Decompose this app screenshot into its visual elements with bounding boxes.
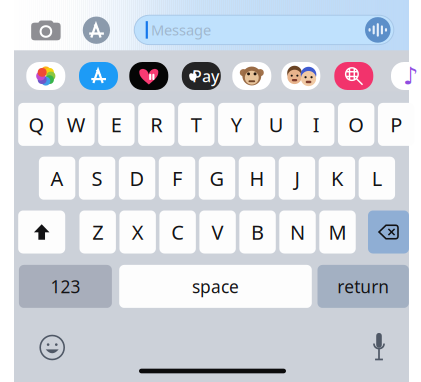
staticText: S	[92, 165, 103, 191]
staticText: G	[209, 165, 224, 191]
staticText: A	[51, 165, 64, 191]
button[interactable]: Record audio message	[365, 17, 391, 43]
staticText: N	[290, 219, 305, 245]
staticText: B	[251, 219, 264, 245]
staticText: W	[67, 111, 86, 138]
staticText: J	[294, 165, 299, 191]
button[interactable]: W	[58, 103, 95, 146]
button[interactable]: Dictation	[370, 332, 388, 360]
button[interactable]: B	[239, 210, 276, 253]
button[interactable]: N	[279, 210, 316, 253]
button[interactable]: App Store	[79, 62, 118, 90]
staticText: 123	[50, 275, 80, 298]
button[interactable]: S	[79, 157, 115, 200]
button[interactable]: Q	[18, 103, 55, 146]
button[interactable]: Camera	[30, 19, 61, 41]
button[interactable]: Images	[334, 62, 373, 90]
button[interactable]: K	[319, 157, 355, 200]
button[interactable]: L	[359, 157, 395, 200]
button[interactable]: O	[338, 103, 374, 146]
button[interactable]: G	[199, 157, 235, 200]
staticText: L	[372, 165, 382, 191]
button[interactable]: V	[199, 210, 236, 253]
staticText: D	[129, 165, 144, 191]
staticText: X	[132, 219, 144, 245]
staticText: O	[348, 111, 364, 138]
staticText: T	[191, 111, 202, 138]
button[interactable]: I	[298, 103, 334, 146]
button[interactable]: Delete	[368, 210, 409, 253]
button[interactable]: T	[178, 103, 214, 146]
staticText: E	[111, 111, 122, 138]
staticText: Y	[231, 111, 242, 138]
staticText: R	[150, 111, 162, 138]
button[interactable]: Fitness	[129, 62, 168, 90]
button[interactable]: App Store	[82, 16, 110, 44]
staticText: return	[337, 275, 389, 298]
staticText: K	[331, 165, 343, 191]
button[interactable]: Shift	[18, 210, 65, 253]
button[interactable]: D	[119, 157, 155, 200]
staticText: I	[313, 111, 320, 138]
button[interactable]: R	[138, 103, 174, 146]
button[interactable]: Memoji	[281, 62, 320, 90]
button[interactable]: F	[159, 157, 195, 200]
button[interactable]: C	[159, 210, 196, 253]
button[interactable]: Photos	[26, 62, 65, 90]
button[interactable]: Y	[218, 103, 254, 146]
staticText: Message	[151, 20, 211, 40]
button[interactable]: return	[317, 265, 409, 308]
button[interactable]: J	[279, 157, 315, 200]
staticText: H	[249, 165, 264, 191]
button[interactable]: X	[119, 210, 156, 253]
button[interactable]: E	[98, 103, 134, 146]
button[interactable]: Apple Pay	[182, 62, 221, 90]
staticText: V	[212, 219, 224, 245]
button[interactable]: Music	[391, 62, 421, 90]
staticText: Q	[28, 111, 44, 138]
staticText: M	[328, 219, 346, 245]
button[interactable]: M	[319, 210, 356, 253]
button[interactable]: H	[239, 157, 275, 200]
button[interactable]: A	[39, 157, 75, 200]
staticText: C	[171, 219, 184, 245]
staticText: P	[390, 111, 402, 138]
button[interactable]: Emoji	[39, 334, 65, 360]
button[interactable]: P	[378, 103, 414, 146]
button[interactable]: Z	[79, 210, 116, 253]
staticText: F	[172, 165, 182, 191]
staticText: U	[269, 111, 284, 138]
button[interactable]: 123	[19, 265, 112, 308]
staticText: space	[192, 275, 239, 298]
button[interactable]: Animoji	[232, 62, 271, 90]
button[interactable]: U	[258, 103, 294, 146]
staticText: Pay	[192, 65, 219, 87]
staticText: Z	[92, 219, 103, 245]
staticText: ♪	[403, 62, 418, 90]
button[interactable]: space	[119, 265, 312, 308]
